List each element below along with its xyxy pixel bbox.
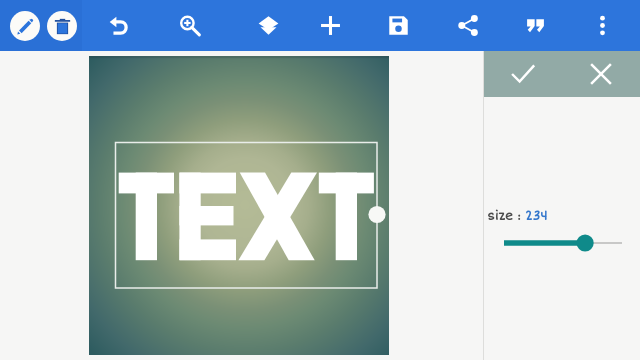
- button[interactable]: Quote: [512, 0, 558, 51]
- button[interactable]: Size slider: [498, 234, 628, 252]
- button[interactable]: Zoom in: [166, 0, 212, 51]
- staticText: 234: [525, 209, 548, 224]
- button[interactable]: Add: [307, 0, 353, 51]
- button[interactable]: Cancel: [562, 51, 640, 97]
- button[interactable]: Layers: [245, 0, 291, 51]
- button[interactable]: More options: [579, 0, 625, 51]
- button[interactable]: size 234: [487, 209, 548, 224]
- button[interactable]: Delete: [47, 11, 77, 41]
- button[interactable]: Apply: [484, 51, 562, 97]
- button[interactable]: Undo: [95, 0, 141, 51]
- button[interactable]: Share: [445, 0, 491, 51]
- button[interactable]: Edit: [10, 11, 40, 41]
- button[interactable]: Save: [375, 0, 421, 51]
- staticText: size :: [487, 209, 525, 224]
